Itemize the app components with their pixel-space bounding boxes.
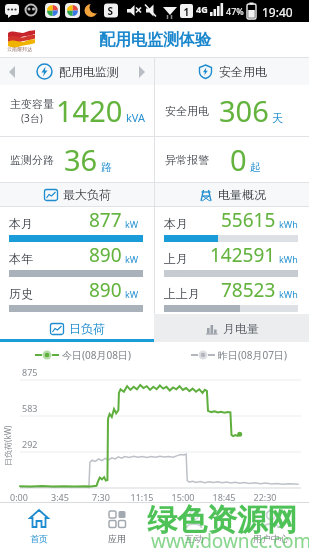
staticText: 路 bbox=[101, 160, 112, 174]
staticText: 1420 bbox=[56, 91, 123, 130]
button[interactable]: 日负荷 bbox=[0, 314, 154, 342]
staticText: 本月 bbox=[164, 216, 188, 231]
staticText: 0 bbox=[230, 140, 247, 179]
staticText: 电量概况 bbox=[218, 187, 266, 202]
staticText: 用户中心 bbox=[253, 533, 289, 544]
staticText: 877 bbox=[89, 207, 122, 233]
staticText: 142591 bbox=[210, 242, 276, 268]
button[interactable]: 安全用电 bbox=[155, 58, 309, 85]
staticText: 主变容量 bbox=[10, 97, 54, 111]
staticText: 互动 bbox=[185, 533, 203, 544]
staticText: 55615 bbox=[221, 207, 276, 233]
staticText: 月电量 bbox=[223, 321, 259, 336]
staticText: 上月 bbox=[164, 251, 188, 266]
staticText: 890 bbox=[89, 277, 122, 303]
staticText: 安全用电 bbox=[219, 64, 267, 79]
staticText: kW bbox=[125, 253, 139, 265]
staticText: 监测分路 bbox=[10, 153, 54, 167]
staticText: www.downcc.com bbox=[151, 528, 309, 550]
button[interactable]: 月电量 bbox=[154, 314, 309, 342]
staticText: 昨日(08月07日) bbox=[218, 348, 287, 362]
staticText: kWh bbox=[279, 288, 298, 300]
button[interactable]: 首页 bbox=[0, 503, 78, 550]
staticText: kWh bbox=[279, 253, 298, 265]
staticText: 本月 bbox=[9, 216, 33, 231]
staticText: (3台) bbox=[21, 111, 43, 125]
staticText: kW bbox=[125, 288, 139, 300]
button[interactable]: 应用 bbox=[78, 503, 155, 550]
staticText: 绿色资源网 bbox=[147, 501, 297, 539]
staticText: kWh bbox=[279, 218, 298, 230]
staticText: kW bbox=[125, 218, 139, 230]
staticText: 本年 bbox=[9, 251, 33, 266]
staticText: 配用电监测 bbox=[59, 64, 119, 79]
staticText: 历史 bbox=[9, 286, 33, 301]
button[interactable]: 配用电监测 bbox=[0, 58, 154, 85]
staticText: 上上月 bbox=[164, 286, 200, 301]
staticText: 安全用电 bbox=[165, 104, 209, 118]
staticText: 890 bbox=[89, 242, 122, 268]
button[interactable]: 互动 bbox=[155, 503, 232, 550]
staticText: kVA bbox=[126, 110, 146, 125]
staticText: 78523 bbox=[221, 277, 276, 303]
staticText: 配用电监测体验 bbox=[99, 30, 211, 50]
staticText: 306 bbox=[219, 91, 269, 130]
staticText: 应用 bbox=[108, 533, 126, 544]
staticText: 天 bbox=[272, 111, 283, 125]
staticText: 最大负荷 bbox=[63, 187, 111, 202]
staticText: 今日(08月08日) bbox=[62, 348, 131, 362]
staticText: 首页 bbox=[30, 533, 48, 544]
button[interactable]: 用户中心 bbox=[232, 503, 309, 550]
staticText: 日负荷 bbox=[69, 321, 105, 336]
staticText: 异常报警 bbox=[165, 153, 209, 167]
staticText: 起 bbox=[250, 160, 261, 174]
staticText: 36 bbox=[64, 140, 98, 179]
